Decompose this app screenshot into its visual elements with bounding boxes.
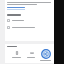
button[interactable]: Copy link bbox=[11, 49, 22, 58]
button[interactable] bbox=[7, 26, 56, 29]
button[interactable]: Learn more link bbox=[7, 7, 25, 10]
button[interactable]: More options bbox=[39, 49, 52, 61]
button[interactable]: Message bbox=[26, 49, 36, 58]
button[interactable] bbox=[7, 19, 56, 22]
